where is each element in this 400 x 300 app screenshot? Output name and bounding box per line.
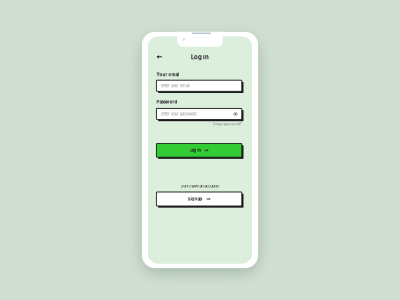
staticText: Don't have an account?: [180, 184, 219, 188]
button[interactable]: Forgot password?: [156, 122, 242, 126]
button[interactable]: Log in: [156, 143, 243, 159]
staticText: Forgot password?: [213, 122, 242, 126]
staticText: Password: [156, 99, 177, 105]
staticText: Log in: [191, 53, 209, 61]
button[interactable]: Sign up: [156, 192, 243, 208]
staticText: Enter your password: [161, 111, 196, 116]
staticText: Sign up: [188, 197, 203, 201]
staticText: Log in: [190, 148, 201, 153]
staticText: Your email: [156, 72, 179, 77]
button[interactable]: Back: [153, 51, 165, 63]
staticText: Enter your email: [161, 83, 190, 88]
